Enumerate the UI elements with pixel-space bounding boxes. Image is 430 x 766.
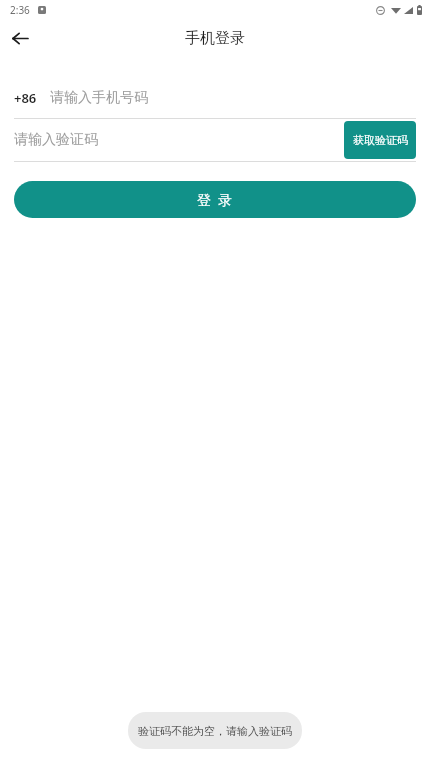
staticText: 验证码不能为空，请输入验证码 (138, 724, 292, 738)
staticText: 手机登录 (185, 29, 245, 48)
staticText: 请输入验证码 (14, 131, 98, 149)
staticText: 2:36 (10, 3, 30, 17)
button[interactable]: 登 录 (14, 181, 416, 218)
staticText: 请输入手机号码 (50, 89, 148, 107)
button[interactable]: 请输入验证码 (14, 131, 98, 149)
staticText: 登 录 (197, 190, 233, 209)
button[interactable]: 获取验证码 (344, 121, 416, 159)
staticText: 获取验证码 (353, 133, 408, 147)
button[interactable]: Back (0, 20, 40, 56)
button[interactable]: 登录即代表同意服务和隐私条款 (138, 735, 292, 749)
button[interactable]: +86 (14, 84, 416, 112)
staticText: +86 (14, 89, 37, 107)
